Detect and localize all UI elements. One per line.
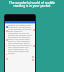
staticText: Reading on a phone used to feel like a c… xyxy=(8,24,32,54)
staticText: The wonderful world of mobile reading is… xyxy=(3,1,61,8)
